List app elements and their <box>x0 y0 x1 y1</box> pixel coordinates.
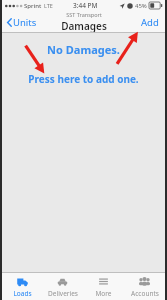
staticText: Damages <box>61 19 107 33</box>
button[interactable]: Accounts <box>124 273 165 300</box>
staticText: No Damages. <box>47 42 120 57</box>
other: Accounts <box>139 276 150 287</box>
button[interactable]: More <box>83 273 124 300</box>
staticText: Add <box>141 16 159 29</box>
button[interactable]: Units <box>5 13 39 32</box>
staticText: More <box>95 289 112 298</box>
staticText: Loads <box>13 289 32 298</box>
staticText: Deliveries <box>48 289 78 298</box>
staticText: Accounts <box>131 289 159 298</box>
other: More <box>98 276 109 287</box>
staticText: Press here to add one. <box>28 72 139 86</box>
button[interactable]: Press here to add one. <box>28 72 139 86</box>
staticText: 45% <box>135 2 147 10</box>
staticText: Units <box>13 16 37 29</box>
button[interactable]: Add <box>139 13 161 32</box>
staticText: LTE <box>44 2 53 9</box>
staticText: SST Transport <box>66 11 102 18</box>
button[interactable]: Deliveries <box>42 273 83 300</box>
other: Loads <box>17 276 28 287</box>
staticText: Sprint <box>24 2 42 10</box>
staticText: 3:44 PM <box>73 1 98 10</box>
other: Deliveries <box>57 276 68 287</box>
button[interactable]: Loads <box>2 273 42 300</box>
